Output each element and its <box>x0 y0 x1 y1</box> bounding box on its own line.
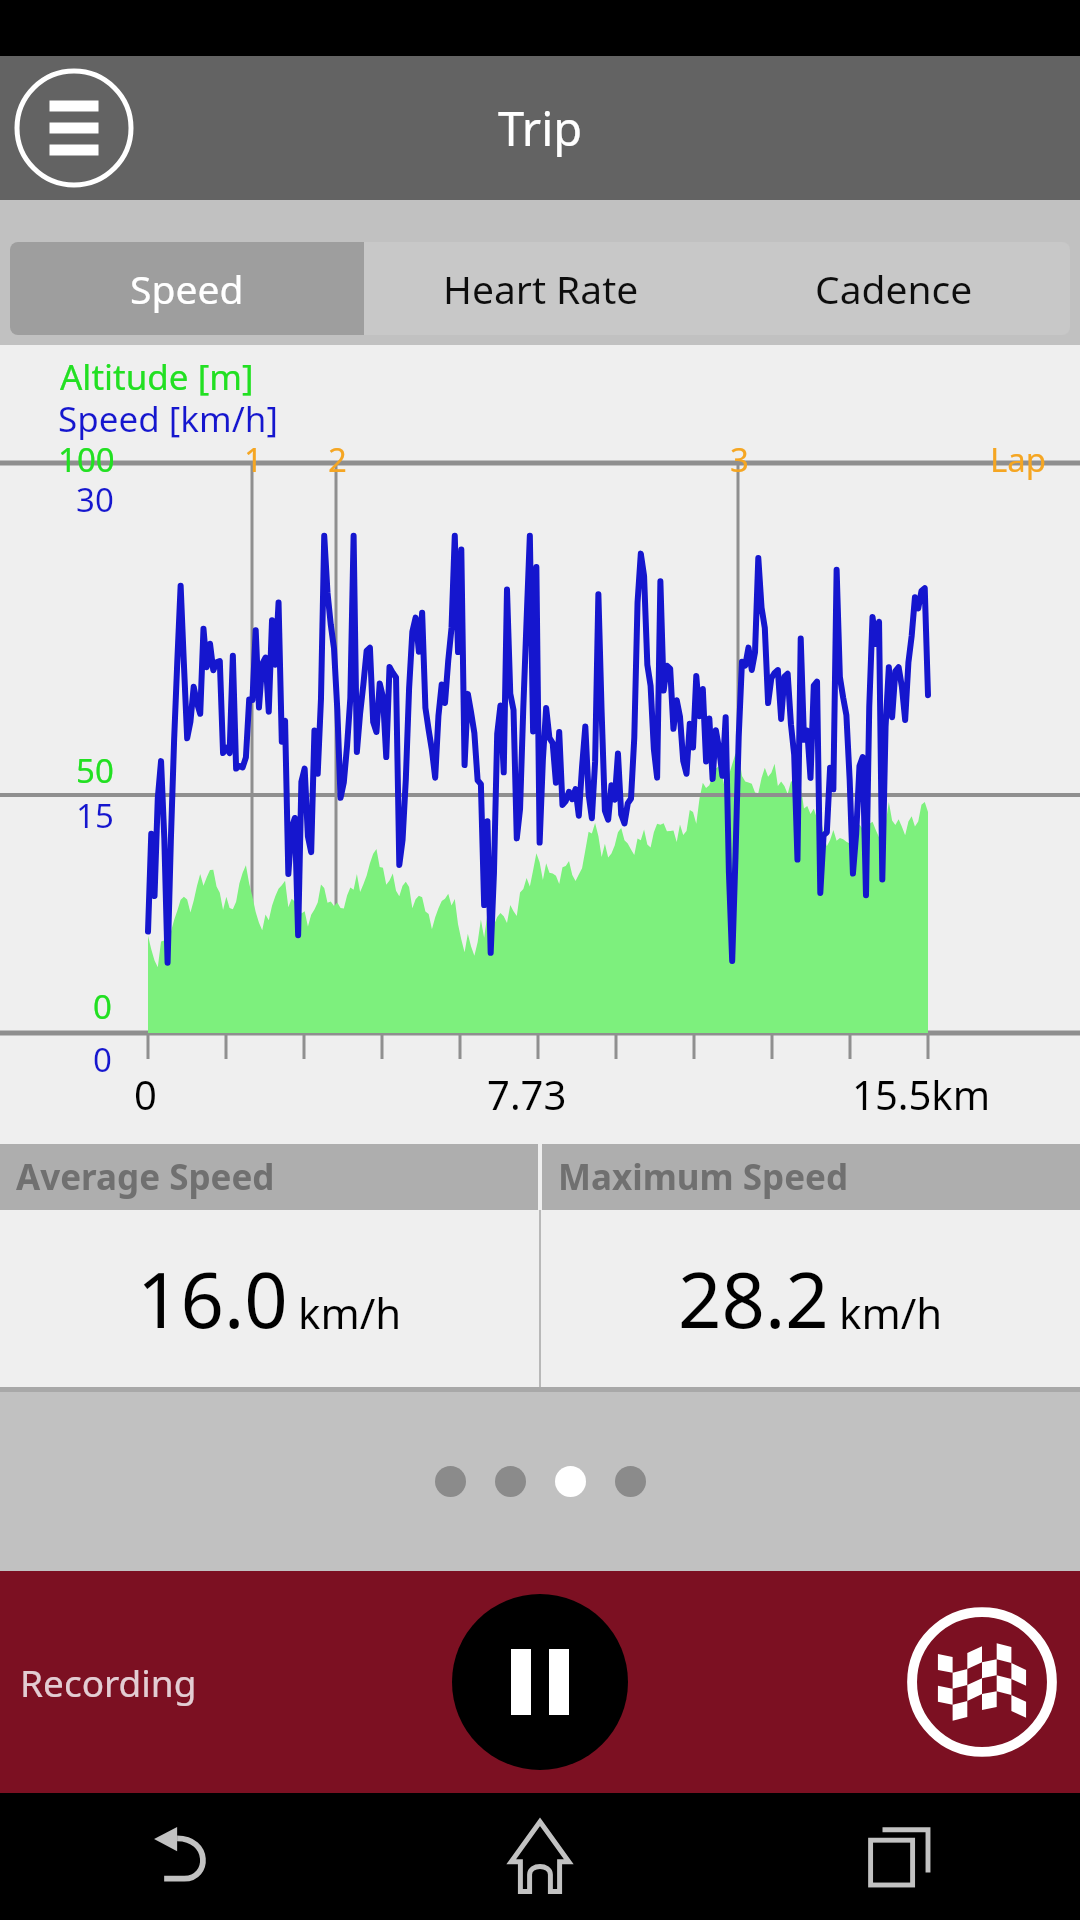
staticText: Recording <box>20 1657 197 1707</box>
button[interactable]: 28.2 <box>541 1210 1080 1387</box>
staticText: Lap <box>990 437 1047 482</box>
staticText: km/h <box>298 1284 402 1341</box>
staticText: 7.73 <box>487 1067 567 1121</box>
staticText: Trip <box>498 96 583 160</box>
staticText: Speed [km/h] <box>58 395 278 443</box>
button[interactable]: Finish trip <box>906 1606 1058 1758</box>
button[interactable]: Speed <box>10 242 364 335</box>
staticText: km/h <box>839 1284 943 1341</box>
button[interactable]: Menu <box>14 68 134 188</box>
staticText: 2 <box>328 437 347 482</box>
staticText: 0 <box>93 984 112 1029</box>
staticText: 30 <box>76 477 114 522</box>
staticText: Average Speed <box>16 1153 275 1201</box>
button[interactable]: Home <box>360 1793 720 1920</box>
button[interactable]: Page 3 <box>555 1466 586 1497</box>
button[interactable]: Recent apps <box>720 1793 1080 1920</box>
staticText: 3 <box>730 437 749 482</box>
staticText: 15.5km <box>852 1067 991 1121</box>
button[interactable]: Pause recording <box>452 1594 628 1770</box>
staticText: 15 <box>76 793 114 838</box>
staticText: 28.2 <box>678 1247 829 1351</box>
staticText: 1 <box>244 437 263 482</box>
button[interactable]: Page 2 <box>495 1466 526 1497</box>
button[interactable]: Page 4 <box>615 1466 646 1497</box>
staticText: 50 <box>76 748 114 793</box>
staticText: 100 <box>58 437 115 482</box>
button[interactable]: Back <box>0 1793 360 1920</box>
staticText: Speed <box>130 262 244 315</box>
staticText: 0 <box>134 1067 157 1121</box>
staticText: Maximum Speed <box>558 1153 849 1201</box>
button[interactable]: 16.0 <box>0 1210 539 1387</box>
staticText: 0 <box>93 1037 112 1082</box>
staticText: Heart Rate <box>443 262 639 315</box>
button[interactable]: Cadence <box>717 242 1070 335</box>
button[interactable]: Page 1 <box>435 1466 466 1497</box>
button[interactable]: Heart Rate <box>364 242 717 335</box>
staticText: Altitude [m] <box>60 353 254 401</box>
staticText: 16.0 <box>137 1247 288 1351</box>
staticText: Cadence <box>815 262 973 315</box>
